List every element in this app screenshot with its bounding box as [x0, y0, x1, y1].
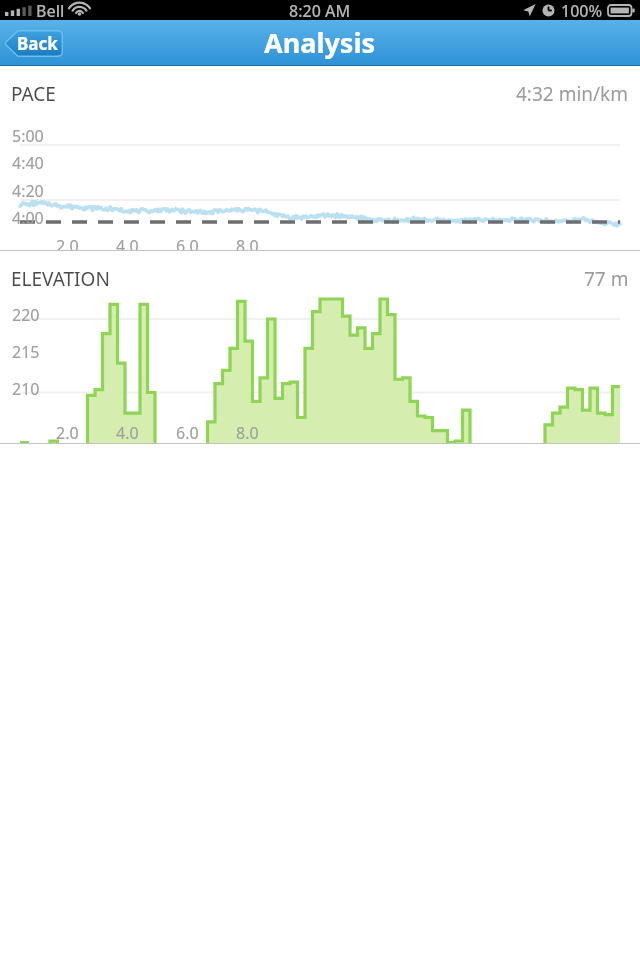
staticText: 8.0 — [236, 235, 259, 257]
staticText: Bell — [36, 0, 65, 20]
staticText: Analysis — [264, 24, 376, 61]
staticText: 2.0 — [56, 422, 79, 444]
staticText: 6.0 — [176, 235, 199, 257]
staticText: 210 — [12, 378, 40, 400]
staticText: 8.0 — [236, 422, 259, 444]
staticText: 2.0 — [56, 235, 79, 257]
staticText: ELEVATION — [11, 266, 110, 292]
staticText: 4:00 — [12, 207, 44, 229]
staticText: 77 m — [584, 266, 629, 292]
staticText: 5:00 — [12, 125, 44, 147]
staticText: Back — [17, 32, 58, 55]
staticText: 6.0 — [176, 422, 199, 444]
staticText: 100% — [561, 0, 603, 20]
button[interactable]: ELEVATION — [0, 251, 640, 443]
staticText: 4:20 — [12, 180, 44, 202]
staticText: 4:40 — [12, 152, 44, 174]
staticText: PACE — [11, 81, 56, 107]
staticText: 4.0 — [116, 235, 139, 257]
button[interactable]: Back — [4, 30, 63, 57]
staticText: 215 — [12, 341, 40, 363]
staticText: 8:20 AM — [289, 0, 351, 20]
staticText: 4.0 — [116, 422, 139, 444]
staticText: 4:32 min/km — [516, 81, 629, 107]
staticText: 220 — [12, 304, 40, 326]
button[interactable]: PACE — [0, 66, 640, 250]
